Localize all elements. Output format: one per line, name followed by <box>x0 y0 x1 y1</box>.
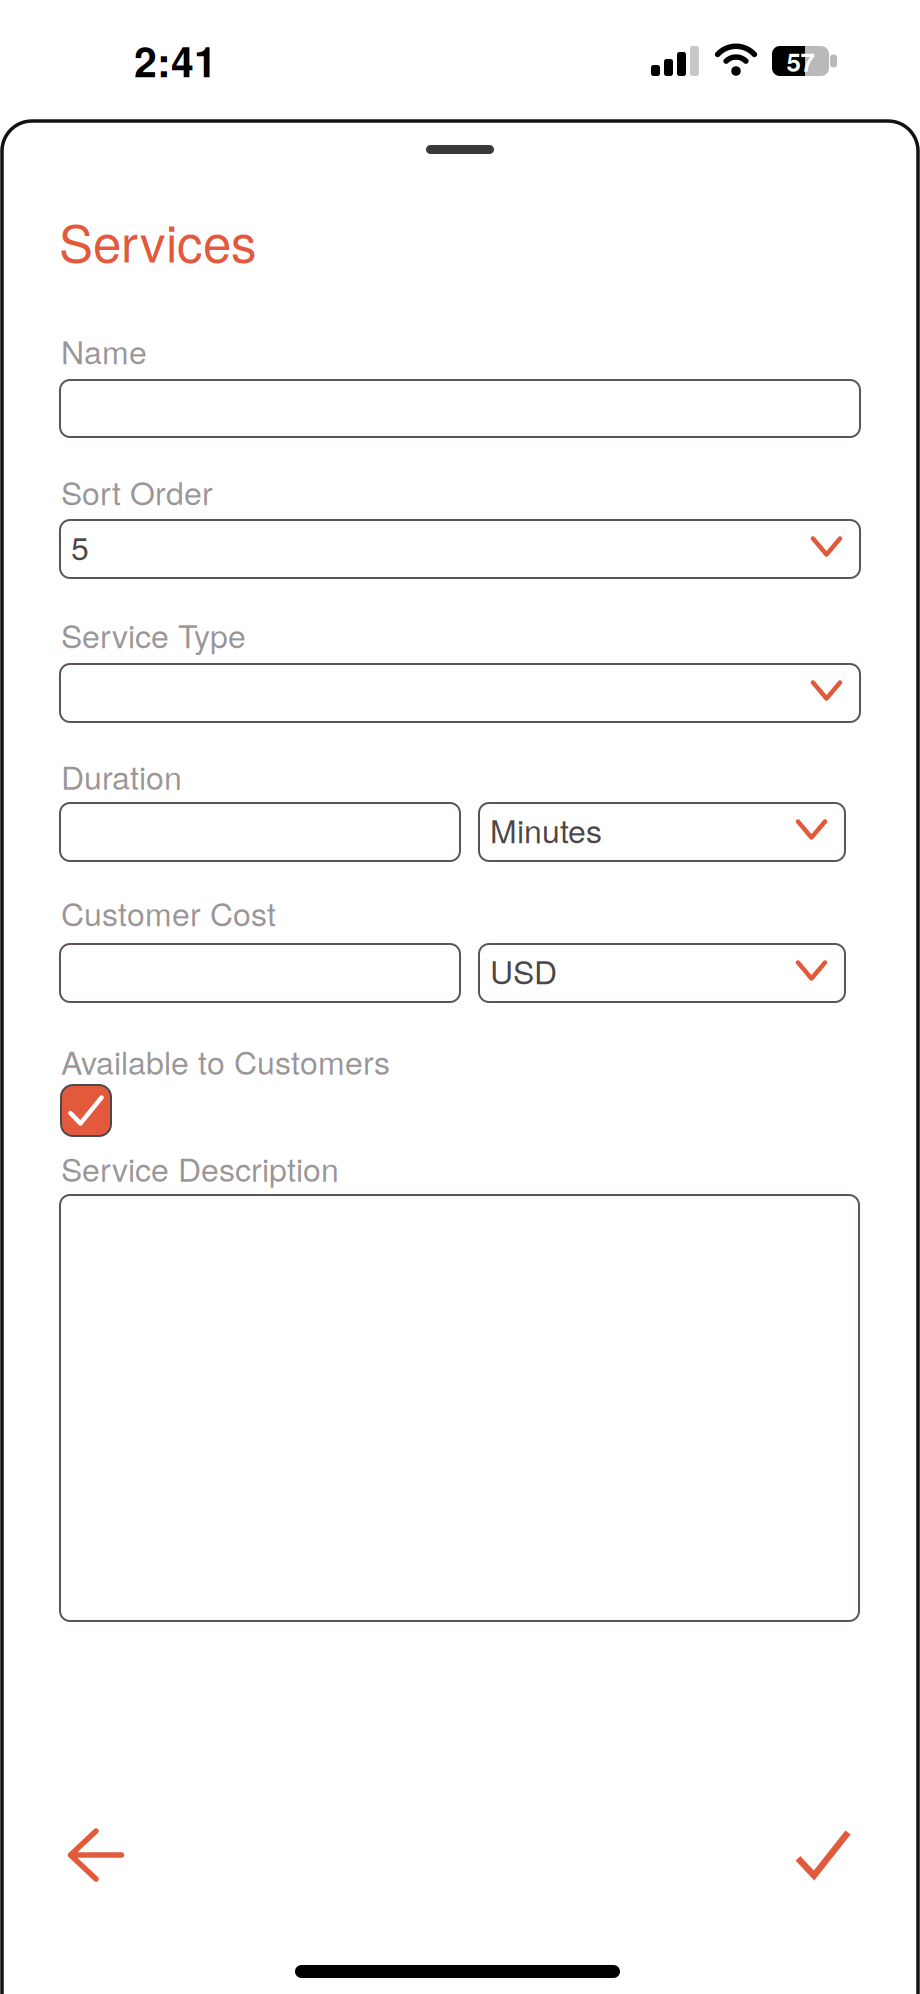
staticText: Customer Cost <box>61 890 276 935</box>
button[interactable]: Duration <box>60 803 460 861</box>
staticText: Available to Customers <box>61 1038 390 1084</box>
staticText: 2:41 <box>134 31 217 90</box>
button[interactable]: Currency <box>479 944 845 1002</box>
staticText: Services <box>59 204 257 277</box>
button[interactable]: Save <box>798 1832 848 1875</box>
button[interactable]: Sort Order <box>60 520 860 578</box>
staticText: Minutes <box>490 807 602 852</box>
button[interactable]: Service Description <box>60 1195 859 1621</box>
button[interactable]: Customer Cost <box>60 944 460 1002</box>
staticText: Service Type <box>61 612 246 657</box>
button[interactable]: Service Type <box>60 664 860 722</box>
staticText: Name <box>61 328 147 373</box>
staticText: 57 <box>786 42 814 80</box>
button[interactable]: Back <box>70 1831 121 1879</box>
staticText: Service Description <box>61 1145 339 1191</box>
staticText: Sort Order <box>61 469 213 514</box>
button[interactable]: Name <box>60 380 860 437</box>
button[interactable]: Available to Customers <box>61 1085 111 1136</box>
button[interactable]: Duration unit <box>479 803 845 861</box>
staticText: USD <box>490 948 557 993</box>
staticText: 5 <box>71 524 89 569</box>
staticText: Duration <box>61 753 182 799</box>
